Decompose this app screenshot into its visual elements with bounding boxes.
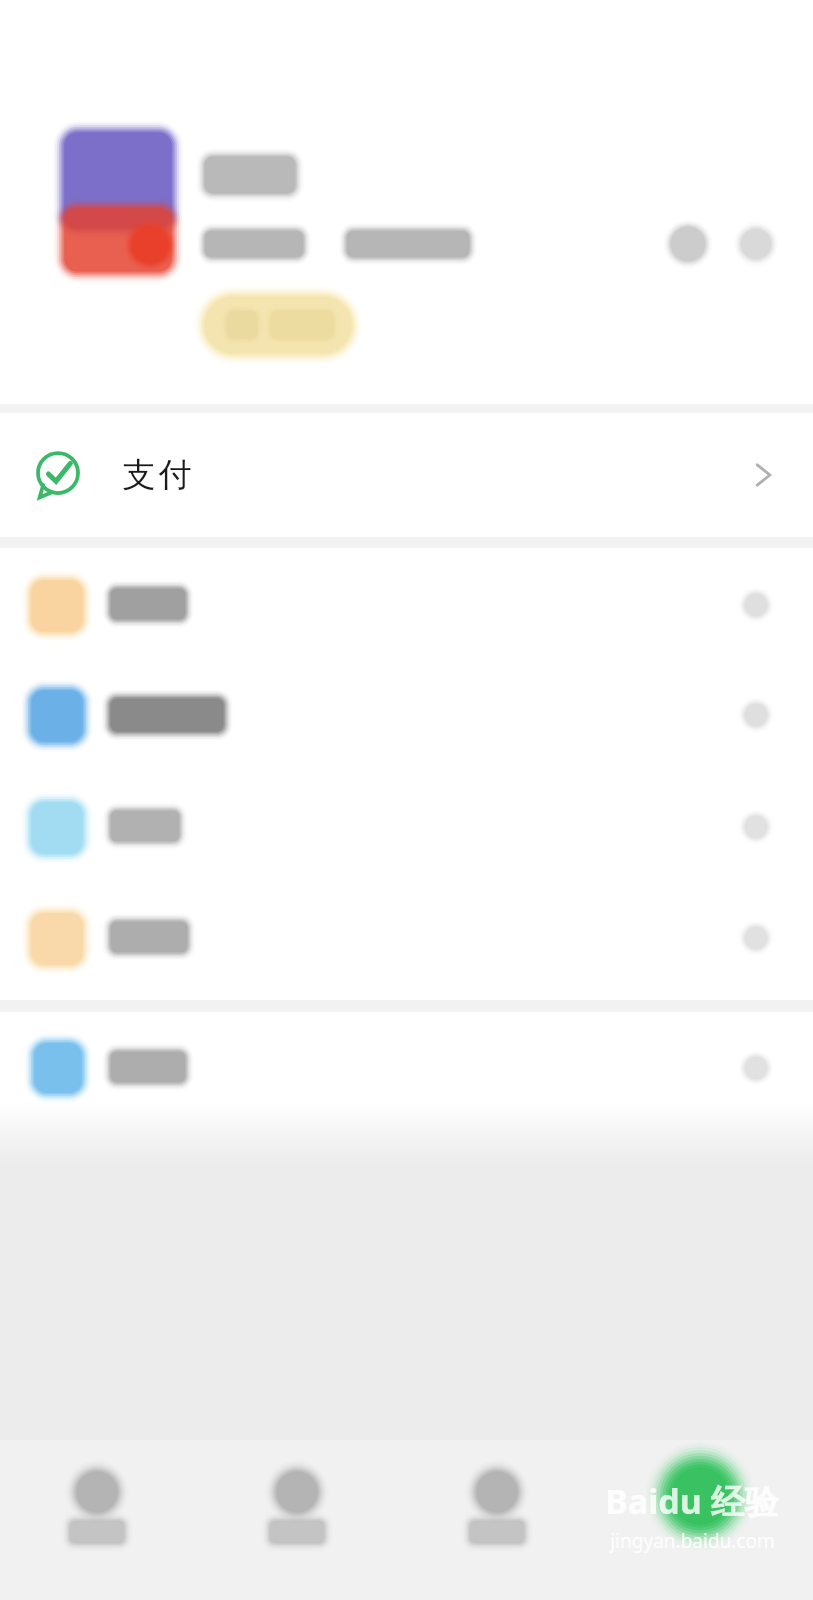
button[interactable]: Discover xyxy=(407,1440,610,1600)
staticText: jingyan.baidu.com xyxy=(610,1528,775,1554)
button[interactable]: List item 3 xyxy=(0,759,813,870)
button[interactable]: Contacts xyxy=(204,1440,407,1600)
button[interactable]: List item 2 xyxy=(0,648,813,759)
button[interactable]: List item 5 xyxy=(0,992,813,1108)
button[interactable]: 支付 xyxy=(0,413,813,537)
button[interactable]: Promoted content card xyxy=(0,110,813,400)
button[interactable]: Me xyxy=(610,1440,813,1600)
button[interactable]: WeChat xyxy=(0,1440,204,1600)
staticText: Baidu 经验 xyxy=(605,1478,779,1524)
button[interactable]: List item 1 xyxy=(0,537,813,648)
staticText: 支付 xyxy=(121,454,193,496)
button[interactable]: List item 4 xyxy=(0,870,813,980)
